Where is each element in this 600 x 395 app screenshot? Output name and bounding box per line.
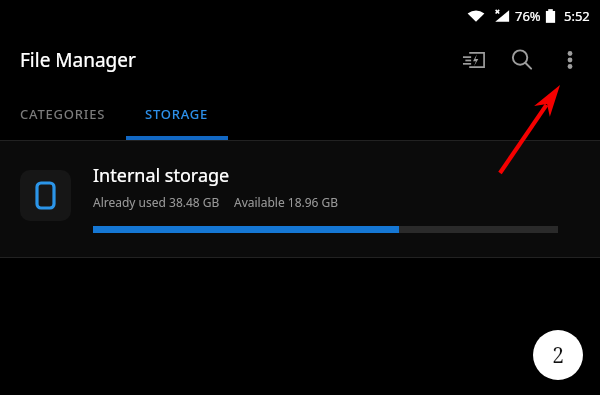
staticText: Available 18.96 GB bbox=[234, 194, 339, 210]
staticText: Already used 38.48 GB bbox=[93, 194, 220, 210]
staticText: CATEGORIES bbox=[20, 105, 106, 123]
button[interactable]: Quick transfer bbox=[450, 36, 498, 84]
staticText: Internal storage bbox=[93, 163, 230, 188]
staticText: 2 bbox=[552, 341, 564, 370]
staticText: 76% bbox=[515, 7, 541, 25]
button[interactable]: 2 bbox=[533, 330, 583, 380]
staticText: STORAGE bbox=[145, 105, 209, 123]
button[interactable]: More options bbox=[546, 36, 594, 84]
staticText: File Manager bbox=[20, 47, 136, 73]
staticText: 5:52 bbox=[564, 7, 590, 25]
button[interactable]: Internal storage bbox=[0, 141, 600, 257]
button[interactable]: CATEGORIES bbox=[0, 88, 126, 140]
button[interactable]: STORAGE bbox=[126, 88, 228, 140]
button[interactable]: Search bbox=[498, 36, 546, 84]
